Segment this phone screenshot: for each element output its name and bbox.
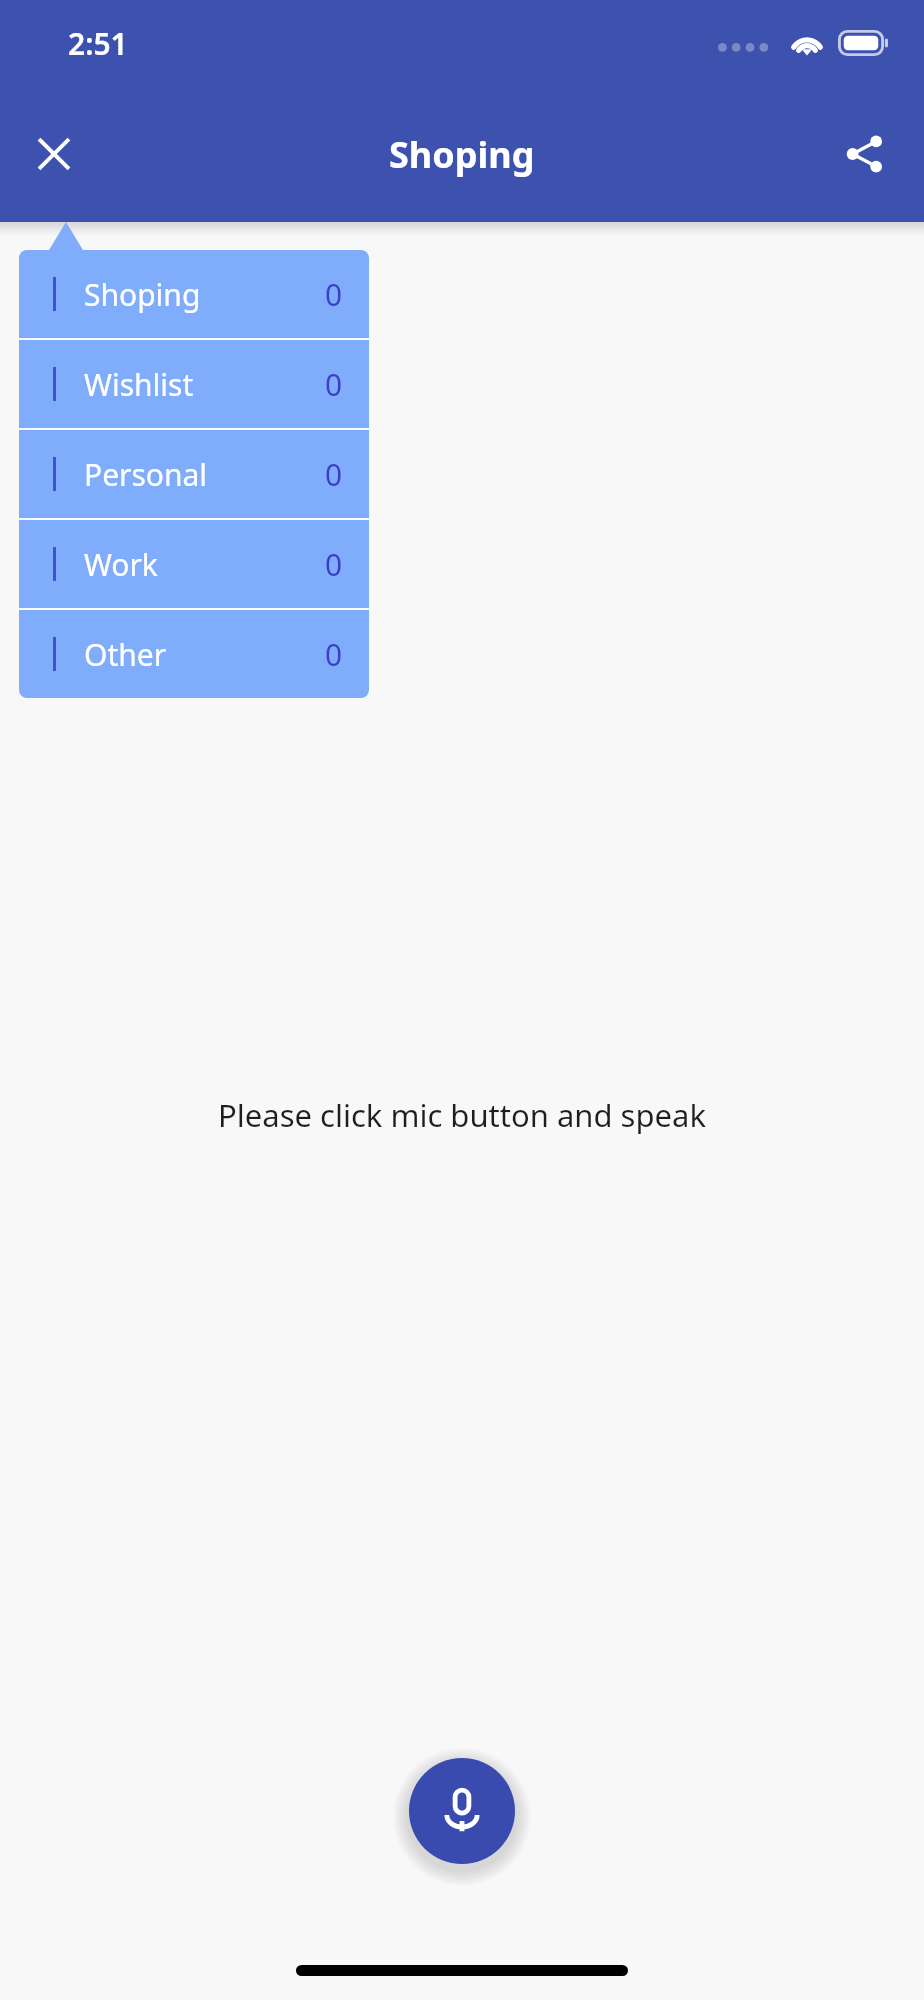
button[interactable]: Shoping bbox=[19, 250, 369, 338]
staticText: 0 bbox=[325, 544, 343, 585]
staticText: 0 bbox=[325, 454, 343, 495]
staticText: Personal bbox=[84, 454, 208, 495]
staticText: Wishlist bbox=[84, 364, 194, 405]
button[interactable]: Other bbox=[19, 610, 369, 698]
staticText: Please click mic button and speak bbox=[0, 1094, 924, 1136]
button[interactable]: Close bbox=[18, 118, 90, 190]
staticText: 2:51 bbox=[68, 23, 128, 64]
staticText: Shoping bbox=[389, 130, 535, 179]
staticText: 0 bbox=[325, 634, 343, 675]
button[interactable]: Personal bbox=[19, 430, 369, 518]
staticText: 0 bbox=[325, 274, 343, 315]
staticText: Shoping bbox=[84, 274, 201, 315]
button[interactable]: Share bbox=[826, 116, 902, 192]
staticText: Other bbox=[84, 634, 167, 675]
button[interactable]: Microphone bbox=[409, 1758, 515, 1864]
button[interactable]: Work bbox=[19, 520, 369, 608]
staticText: 0 bbox=[325, 364, 343, 405]
button[interactable]: Wishlist bbox=[19, 340, 369, 428]
staticText: Work bbox=[84, 544, 158, 585]
